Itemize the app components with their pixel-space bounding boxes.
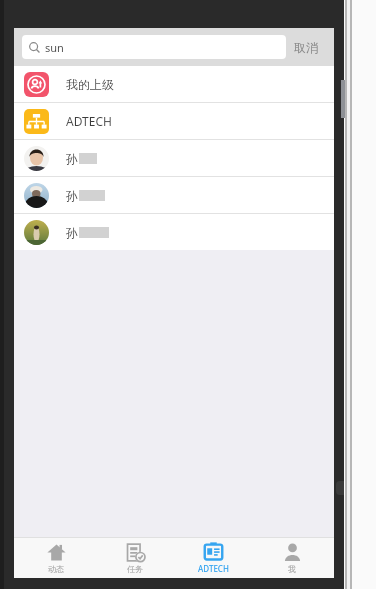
staticText: 任务: [127, 564, 143, 574]
other: 动态: [47, 543, 66, 562]
button[interactable]: 孙: [14, 214, 334, 250]
other: 任务: [126, 543, 145, 562]
button[interactable]: sun: [22, 35, 286, 59]
button[interactable]: ADTECH: [14, 103, 334, 139]
button[interactable]: 任务: [98, 538, 172, 578]
staticText: sun: [45, 40, 64, 55]
button[interactable]: 孙: [14, 177, 334, 213]
button[interactable]: 孙: [14, 140, 334, 176]
staticText: 孙: [66, 188, 78, 203]
staticText: 我的上级: [66, 77, 114, 92]
button[interactable]: 取消: [286, 28, 326, 66]
staticText: 孙: [66, 151, 78, 166]
staticText: 我: [288, 564, 296, 574]
button[interactable]: ADTECH: [176, 538, 250, 578]
button[interactable]: 动态: [19, 538, 93, 578]
button[interactable]: 我: [255, 538, 329, 578]
other: 我: [283, 543, 302, 562]
staticText: 动态: [48, 564, 64, 574]
other: ADTECH: [204, 542, 223, 561]
staticText: ADTECH: [198, 563, 229, 574]
staticText: 孙: [66, 225, 78, 240]
staticText: ADTECH: [66, 113, 112, 129]
button[interactable]: 我的上级: [14, 66, 334, 102]
staticText: 取消: [294, 40, 318, 55]
